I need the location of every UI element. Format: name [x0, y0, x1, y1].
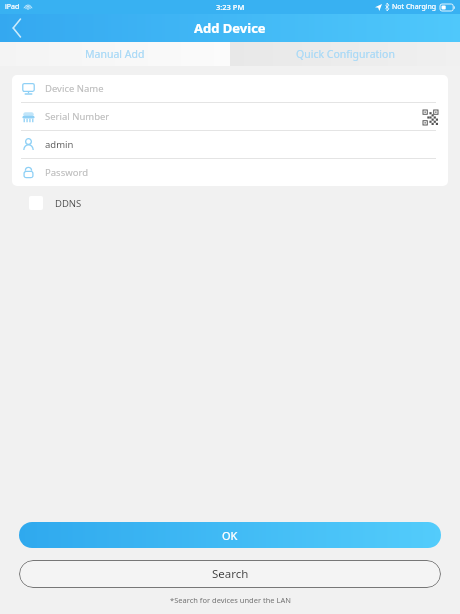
staticText: Search: [212, 566, 249, 582]
staticText: Device Name: [45, 82, 104, 95]
button[interactable]: Back: [0, 14, 34, 42]
button[interactable]: OK: [19, 522, 441, 548]
staticText: Quick Configuration: [296, 47, 395, 61]
staticText: Serial Number: [45, 110, 110, 123]
staticText: DDNS: [55, 197, 82, 210]
button[interactable]: Device Name: [12, 75, 448, 102]
button[interactable]: Password: [12, 159, 448, 186]
staticText: Not Charging: [392, 2, 437, 12]
button[interactable]: Serial Number: [12, 103, 448, 130]
staticText: OK: [222, 528, 238, 543]
button[interactable]: Quick Configuration: [230, 42, 460, 66]
staticText: *Search for devices under the LAN: [170, 595, 291, 605]
staticText: Manual Add: [85, 47, 145, 61]
staticText: Add Device: [194, 19, 266, 37]
button[interactable]: Manual Add: [0, 42, 230, 66]
staticText: 3:23 PM: [216, 2, 245, 12]
button[interactable]: Scan QR code: [421, 108, 439, 126]
staticText: Password: [45, 166, 88, 179]
staticText: admin: [45, 138, 74, 151]
button[interactable]: Search: [19, 560, 441, 588]
staticText: iPad: [5, 2, 20, 12]
button[interactable]: DDNS: [0, 192, 460, 214]
button[interactable]: admin: [12, 131, 448, 158]
